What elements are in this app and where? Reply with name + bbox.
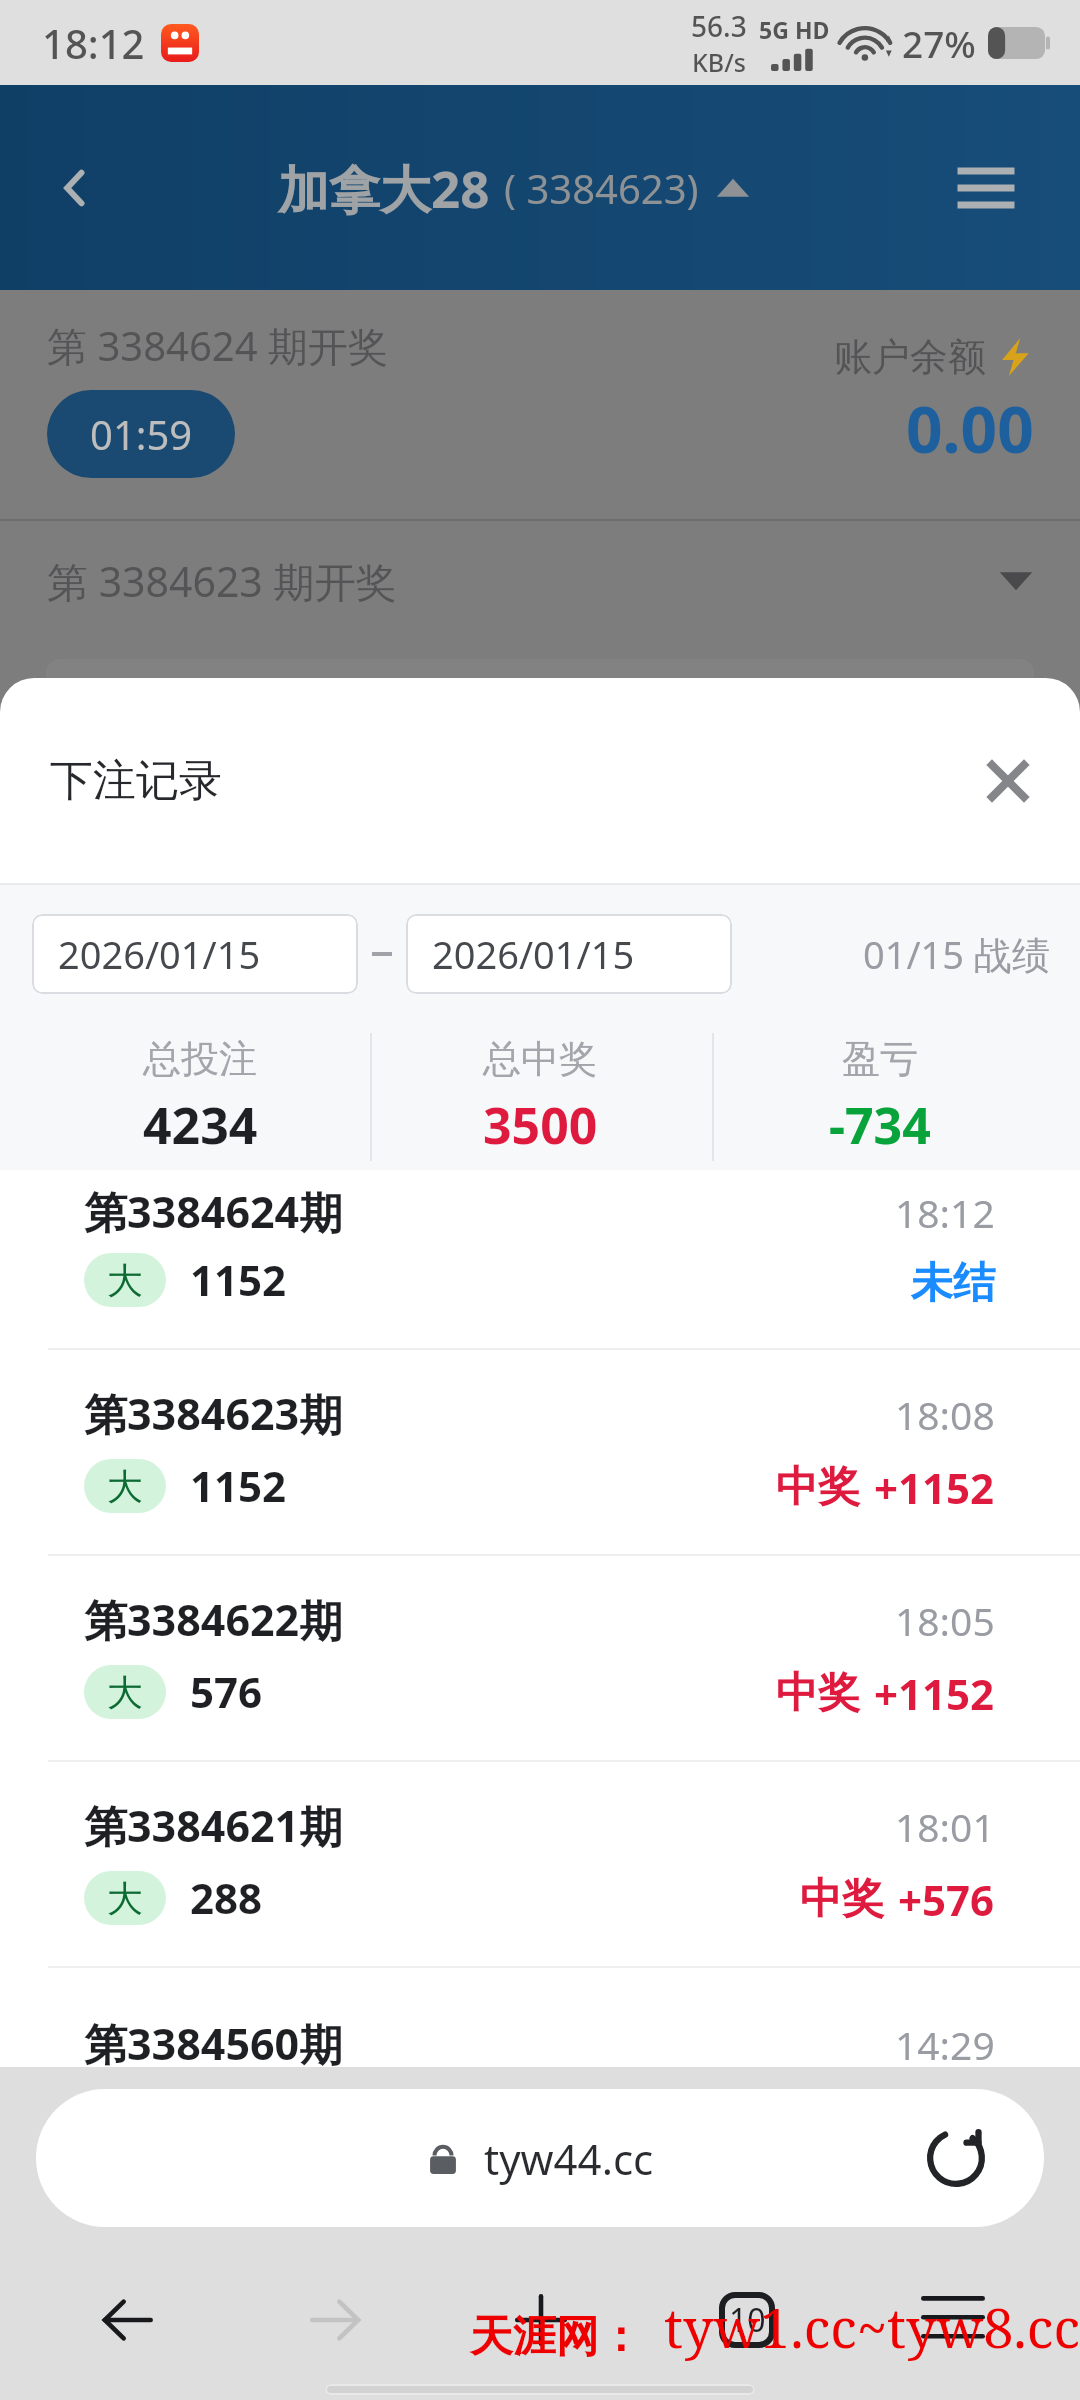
staticText: 27% [902,18,976,68]
staticText: 总投注 [143,1035,257,1083]
staticText: 大 [107,1670,143,1715]
staticText: 加拿大28 [278,153,490,223]
staticText: 3500 [483,1091,598,1159]
staticText: -734 [829,1091,931,1159]
staticText: 01:59 [90,407,193,461]
button[interactable]: 第3384624期 [0,1170,1080,1348]
staticText: 第3384624期 [84,1182,343,1241]
staticText: 未结 [911,1257,995,1310]
staticText: KB/s [692,45,746,79]
button[interactable]: 2026/01/15 [406,914,732,994]
staticText: tyw1.cc~tyw8.cc [664,2290,1080,2364]
button[interactable]: Forward [287,2272,383,2368]
staticText: 18:01 [895,1800,995,1853]
button[interactable]: Back [80,2272,176,2368]
staticText: 大 [107,1876,143,1921]
staticText: ( 3384623) [504,161,699,215]
staticText: 盈亏 [842,1035,918,1083]
staticText: 下注记录 [50,754,222,808]
staticText: 1152 [190,1457,287,1514]
staticText: 01/15 战绩 [863,928,1050,980]
staticText: 第 3384624 期开奖 [47,318,388,373]
staticText: 2026/01/15 [58,928,261,980]
staticText: 天涯网： [470,2310,642,2364]
staticText: 18:12 [895,1186,995,1239]
staticText: 4234 [143,1091,258,1159]
button[interactable]: 第3384621期 [0,1762,1080,1966]
staticText: 第3384623期 [84,1384,343,1443]
button[interactable]: Tabs [699,2272,795,2368]
staticText: 大 [107,1258,143,1303]
staticText: 中奖 [776,1461,860,1514]
staticText: +1152 [874,1459,995,1516]
staticText: 总中奖 [483,1035,597,1083]
staticText: 18:12 [42,16,145,70]
button[interactable]: 第3384622期 [0,1556,1080,1760]
button[interactable]: 第3384623期 [0,1350,1080,1554]
button[interactable]: Close [970,743,1046,819]
staticText: 0.00 [906,385,1034,472]
staticText: 大 [107,1464,143,1509]
button[interactable]: Reload [916,2118,996,2198]
staticText: 第3384621期 [84,1796,343,1855]
staticText: 576 [190,1663,263,1720]
staticText: 第3384560期 [84,2014,343,2067]
staticText: 2026/01/15 [432,928,635,980]
staticText: 中奖 [776,1667,860,1720]
button[interactable]: New tab [493,2272,589,2368]
button[interactable]: Menu [905,2272,1001,2368]
staticText: 5G [759,14,789,45]
staticText: 第3384622期 [84,1590,343,1649]
staticText: 10 [729,2298,766,2342]
staticText: 18:08 [895,1388,995,1441]
button[interactable]: Menu [951,153,1021,223]
staticText: +576 [898,1871,995,1928]
staticText: 账户余额 [834,333,986,381]
button[interactable]: tyw44.cc [36,2089,1044,2227]
staticText: 18:05 [895,1594,995,1647]
button[interactable]: 2026/01/15 [32,914,358,994]
staticText: 56.3 [691,7,747,45]
staticText: 1152 [190,1251,287,1308]
staticText: 288 [190,1869,263,1926]
staticText: tyw44.cc [484,2130,654,2187]
staticText: 中奖 [800,1873,884,1926]
staticText: 14:29 [895,2018,995,2067]
staticText: HD [795,14,830,45]
staticText: 第 3384623 期开奖 [47,553,397,609]
staticText: +1152 [874,1665,995,1722]
button[interactable]: Back [42,156,106,220]
